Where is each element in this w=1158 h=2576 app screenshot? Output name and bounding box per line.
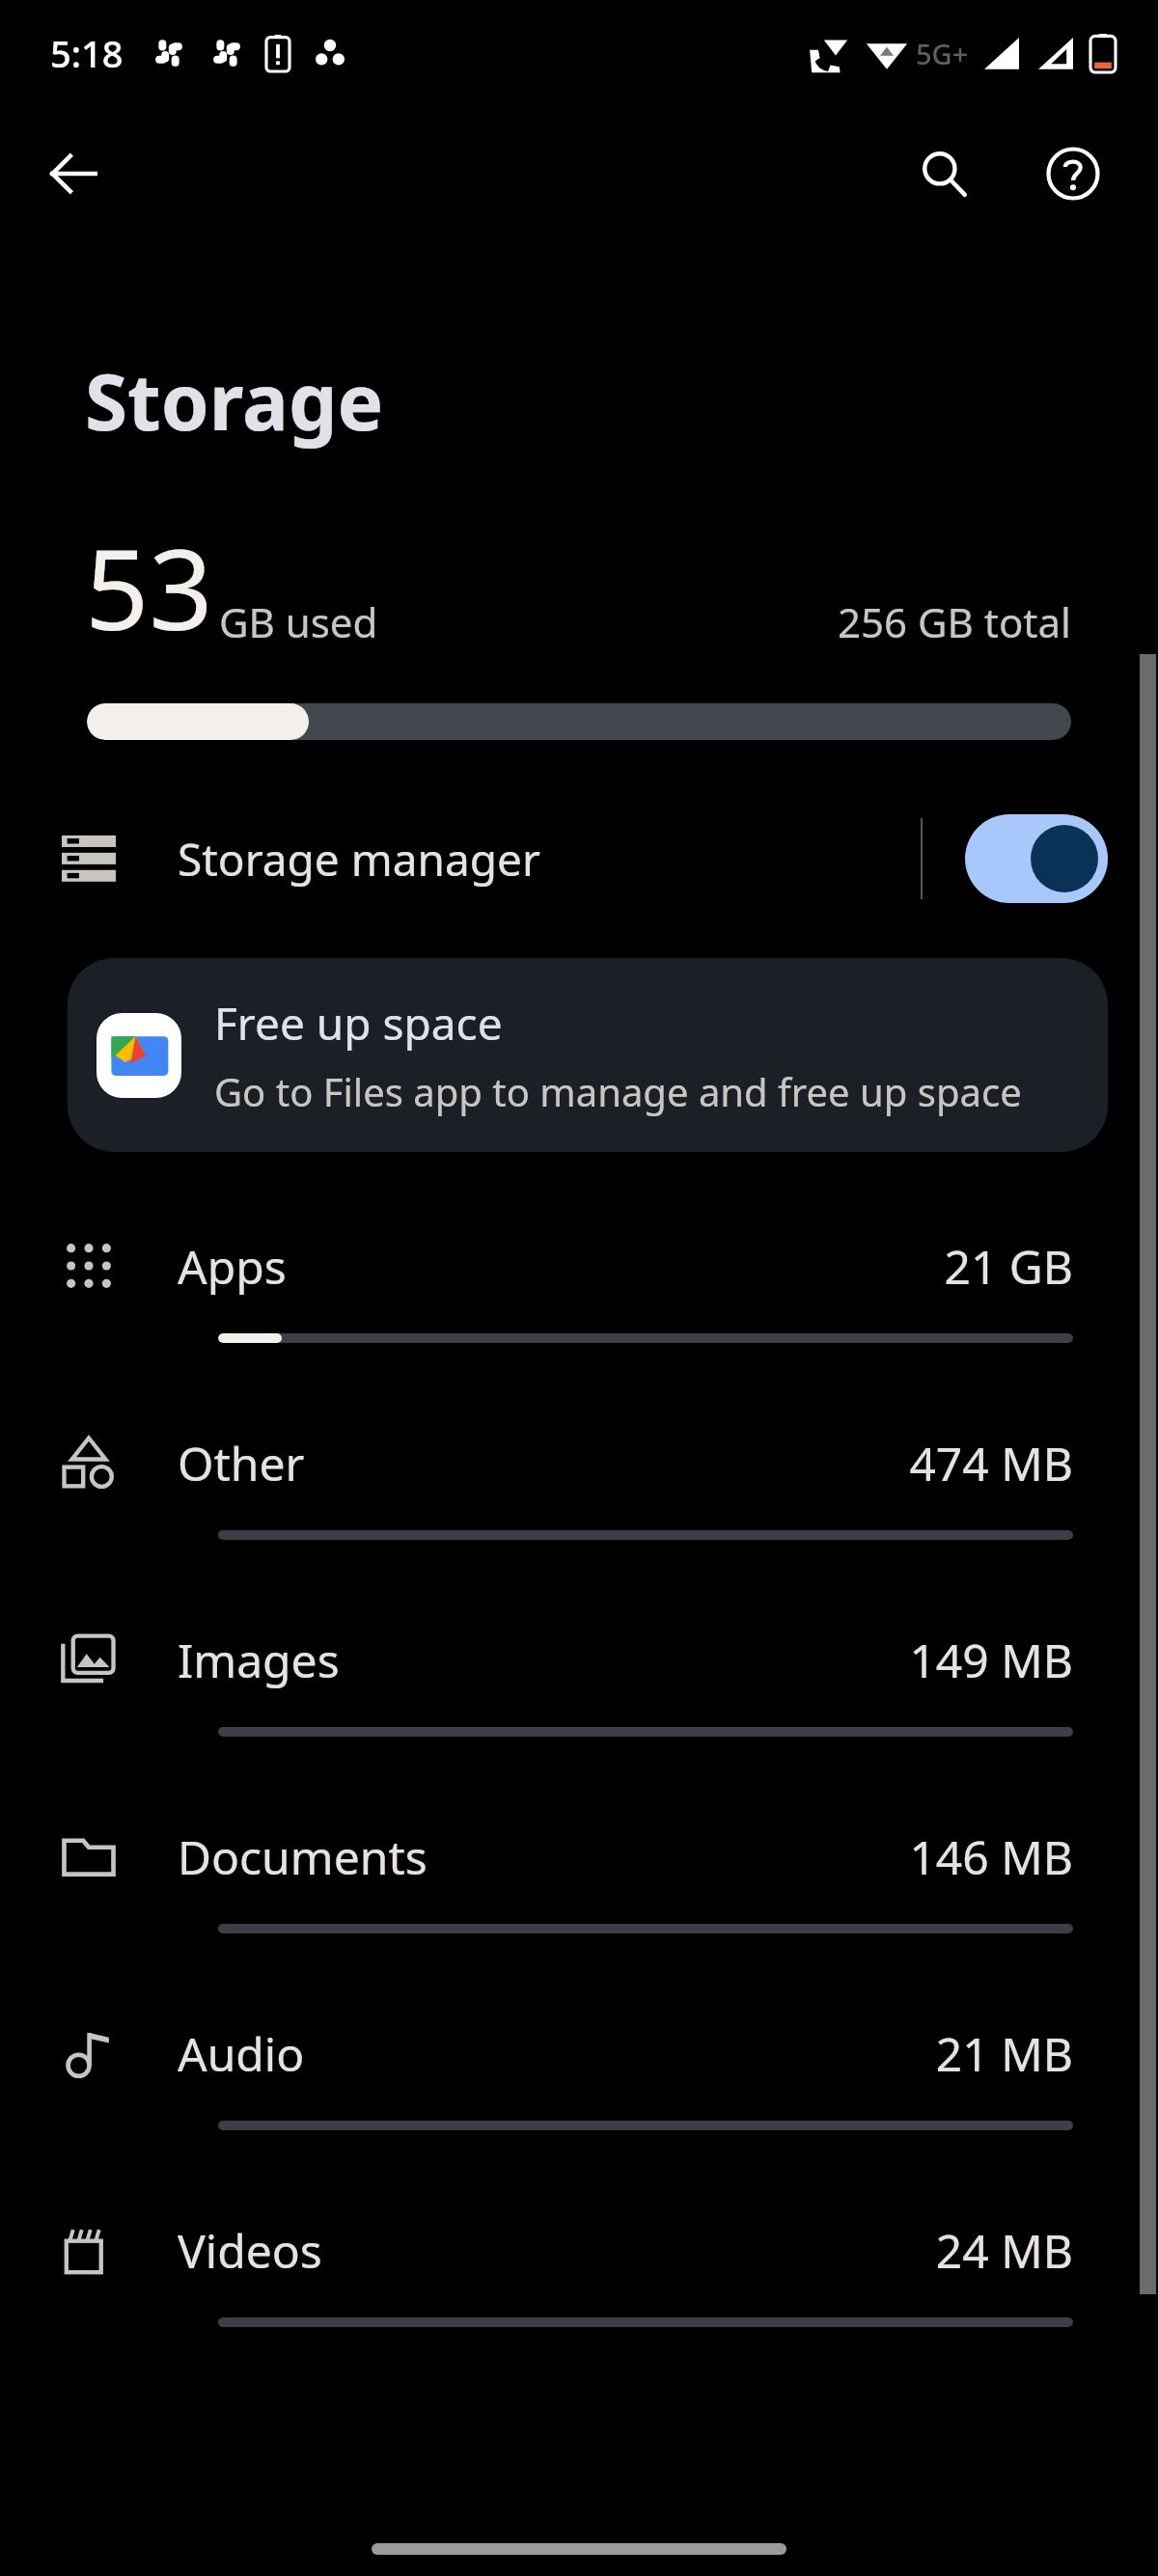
staticText: 5G+ bbox=[916, 35, 969, 72]
button[interactable]: Help bbox=[1027, 127, 1119, 220]
staticText: Apps bbox=[178, 1235, 287, 1298]
staticText: Free up space bbox=[214, 993, 503, 1054]
staticText: Go to Files app to manage and free up sp… bbox=[214, 1065, 1022, 1117]
staticText: 53 bbox=[85, 510, 213, 663]
button[interactable]: Search bbox=[897, 127, 990, 220]
staticText: GB used bbox=[219, 594, 378, 649]
button[interactable]: Free up space bbox=[68, 958, 1108, 1152]
staticText: Other bbox=[178, 1432, 305, 1494]
staticText: Storage manager bbox=[178, 829, 541, 890]
staticText: 149 MB bbox=[909, 1629, 1073, 1691]
staticText: Storage bbox=[85, 347, 384, 452]
staticText: 146 MB bbox=[909, 1825, 1073, 1888]
button[interactable]: Storage manager bbox=[0, 796, 1158, 921]
staticText: Documents bbox=[178, 1825, 427, 1888]
button[interactable]: Back bbox=[27, 127, 120, 220]
button[interactable]: Apps bbox=[0, 1198, 1158, 1395]
button[interactable]: Images bbox=[0, 1592, 1158, 1789]
staticText: 5:18 bbox=[50, 28, 124, 78]
button[interactable]: Storage manager toggle bbox=[965, 814, 1108, 903]
button[interactable]: Audio bbox=[0, 1986, 1158, 2182]
button[interactable]: Other bbox=[0, 1395, 1158, 1592]
staticText: 474 MB bbox=[909, 1432, 1073, 1494]
staticText: 21 MB bbox=[935, 2022, 1073, 2085]
staticText: Audio bbox=[178, 2022, 305, 2085]
staticText: Images bbox=[178, 1629, 340, 1691]
staticText: 21 GB bbox=[944, 1235, 1073, 1298]
staticText: Videos bbox=[178, 2219, 322, 2282]
button[interactable]: Videos bbox=[0, 2182, 1158, 2379]
staticText: 256 GB total bbox=[838, 594, 1071, 649]
staticText: 24 MB bbox=[935, 2219, 1073, 2282]
button[interactable]: Documents bbox=[0, 1789, 1158, 1986]
